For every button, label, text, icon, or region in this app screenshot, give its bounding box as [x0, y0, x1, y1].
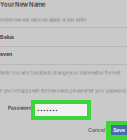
staticText: Cancel [88, 127, 105, 133]
staticText: even [0, 51, 12, 57]
staticText: Your New Name [0, 1, 46, 8]
staticText: Save [113, 127, 125, 133]
staticText: Review how your name will appear on your… [0, 18, 86, 22]
staticText: Note: You won't be able to change your n… [0, 70, 120, 76]
staticText: If you're happy with the new name, pleas… [0, 88, 127, 94]
staticText: Password: [8, 105, 34, 111]
button[interactable]: Password field [31, 100, 91, 120]
button[interactable]: Save [106, 121, 127, 140]
staticText: ••••••• [37, 107, 58, 113]
staticText: Belus [0, 34, 14, 40]
button[interactable]: Cancel [88, 127, 108, 133]
